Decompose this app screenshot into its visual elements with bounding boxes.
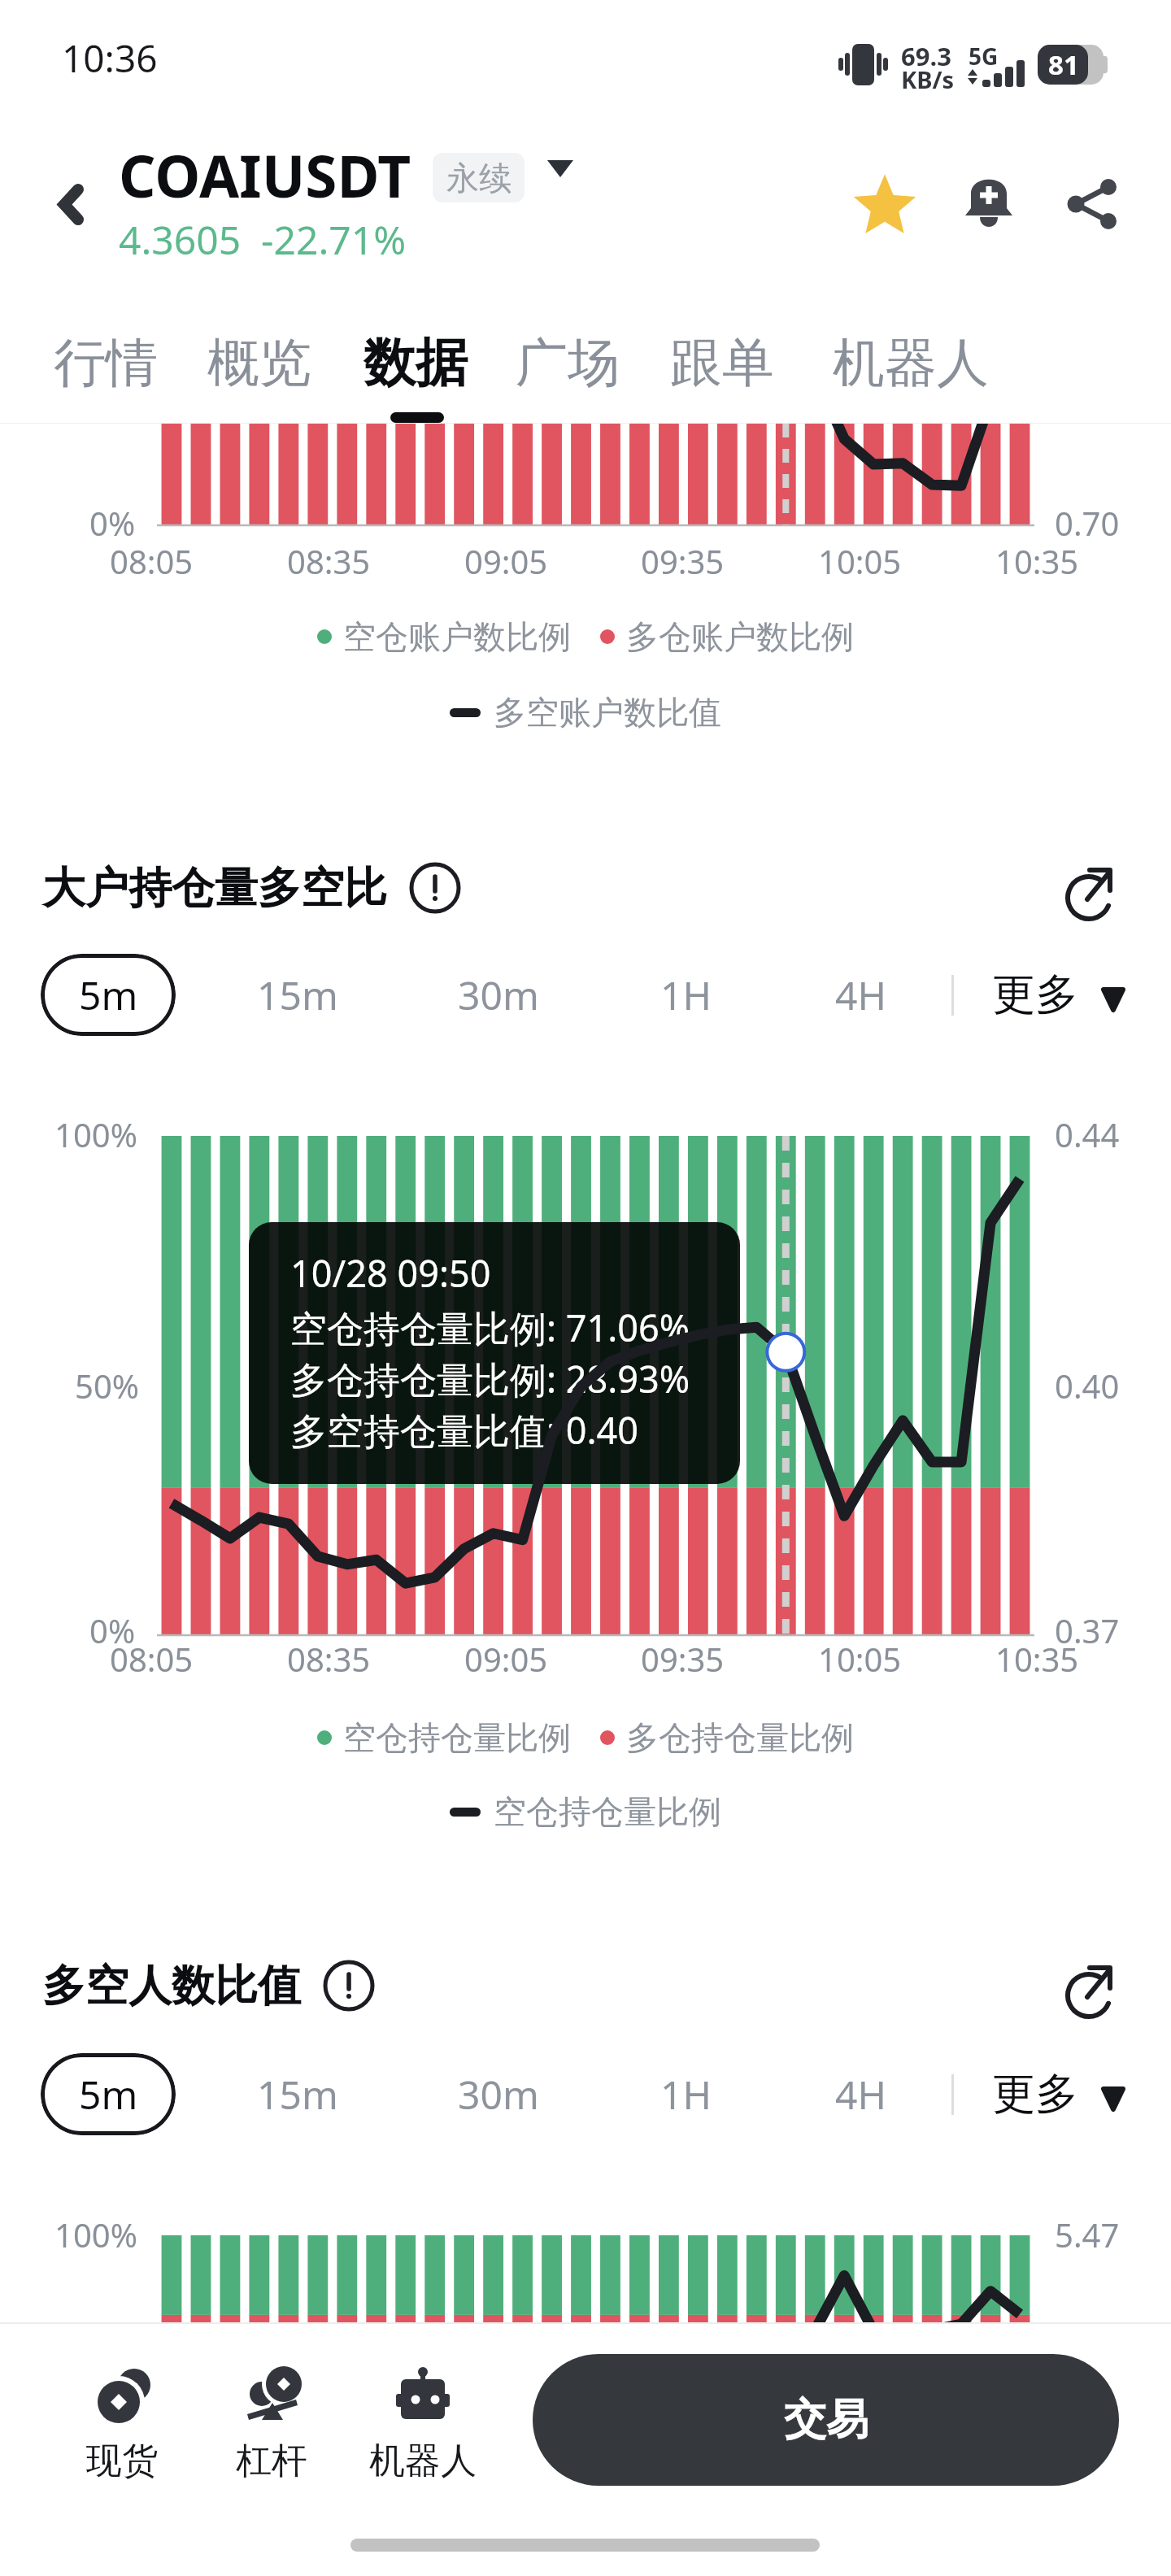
button[interactable]: Information — [407, 859, 464, 916]
staticText: 15m — [257, 968, 338, 1021]
staticText: 10/28 09:50 — [290, 1248, 491, 1298]
staticText: 更多 — [992, 968, 1078, 1022]
staticText: 0.37 — [1055, 1608, 1120, 1652]
staticText: 100% — [54, 1112, 137, 1156]
button[interactable]: Information — [320, 1957, 377, 2014]
button[interactable]: 交易 — [533, 2354, 1119, 2486]
staticText: 10:05 — [818, 1637, 902, 1681]
staticText: 30m — [458, 2068, 539, 2121]
staticText: 08:05 — [110, 1637, 194, 1681]
staticText: 1H — [660, 2068, 712, 2121]
button[interactable]: Share — [1059, 168, 1127, 236]
staticText: 空仓账户数比例 — [343, 616, 571, 657]
button[interactable]: Open in full screen — [1057, 867, 1122, 932]
staticText: 空仓持仓量比例 — [343, 1717, 571, 1758]
staticText: 50% — [75, 1364, 139, 1408]
staticText: 杠杆 — [236, 2439, 307, 2483]
staticText: 08:05 — [110, 539, 194, 583]
button[interactable]: 5m — [41, 954, 176, 1036]
staticText: 更多 — [992, 2067, 1078, 2121]
staticText: 100% — [54, 2213, 137, 2256]
staticText: COAIUSDT — [119, 136, 411, 201]
button[interactable]: 30m — [440, 954, 557, 1036]
staticText: 跟单 — [670, 330, 774, 396]
button[interactable]: 现货 — [57, 2364, 187, 2483]
staticText: 08:35 — [287, 1637, 371, 1681]
button[interactable]: Select contract type — [538, 146, 583, 191]
staticText: KB/s — [901, 63, 955, 95]
staticText: 多空持仓量比值: 0.40 — [290, 1405, 639, 1455]
button[interactable]: 更多 — [984, 2053, 1134, 2135]
button[interactable]: Open in full screen — [1057, 1965, 1122, 2030]
staticText: 10:35 — [995, 539, 1079, 583]
button[interactable]: 跟单 — [654, 317, 790, 409]
staticText: 0% — [89, 1608, 136, 1652]
staticText: 30m — [458, 968, 539, 1021]
staticText: 5m — [79, 2068, 138, 2121]
staticText: 广场 — [516, 330, 620, 396]
staticText: 5G — [969, 41, 999, 72]
button[interactable]: Price alert — [956, 168, 1025, 236]
button[interactable]: 永续 — [433, 153, 525, 202]
button[interactable]: 4H — [803, 2053, 920, 2135]
button[interactable]: 5m — [41, 2053, 176, 2135]
staticText: 4.3605 -22.71% — [119, 213, 407, 266]
staticText: 多仓持仓量比例: 28.93% — [290, 1354, 690, 1403]
staticText: 15m — [257, 2068, 338, 2121]
staticText: 0.44 — [1055, 1112, 1120, 1156]
button[interactable]: 机器人 — [816, 317, 1005, 409]
staticText: 交易 — [784, 2393, 868, 2447]
staticText: 10:36 — [62, 33, 158, 84]
staticText: 永续 — [446, 158, 511, 198]
staticText: 69.3 — [901, 39, 951, 73]
button[interactable]: 杠杆 — [207, 2364, 337, 2483]
button[interactable]: 15m — [239, 954, 356, 1036]
staticText: 5m — [79, 968, 138, 1021]
button[interactable]: 30m — [440, 2053, 557, 2135]
staticText: 大户持仓量多空比 — [42, 861, 387, 916]
button[interactable]: 概览 — [191, 317, 328, 409]
staticText: 4H — [835, 2068, 887, 2121]
button[interactable]: 1H — [628, 2053, 745, 2135]
staticText: 09:05 — [464, 1637, 548, 1681]
staticText: 0% — [89, 501, 136, 545]
staticText: 09:35 — [641, 1637, 725, 1681]
staticText: 现货 — [86, 2439, 158, 2483]
button[interactable]: 更多 — [984, 954, 1134, 1036]
staticText: 4H — [835, 968, 887, 1021]
staticText: 10:35 — [995, 1637, 1079, 1681]
staticText: 空仓持仓量比例 — [494, 1791, 721, 1832]
staticText: 多仓账户数比例 — [626, 616, 854, 657]
button[interactable]: 15m — [239, 2053, 356, 2135]
staticText: 09:35 — [641, 539, 725, 583]
staticText: 行情 — [54, 330, 158, 396]
button[interactable]: 广场 — [499, 317, 636, 409]
staticText: 5.47 — [1055, 2213, 1120, 2256]
staticText: 多空人数比值 — [42, 1959, 301, 2013]
staticText: 机器人 — [369, 2439, 477, 2483]
staticText: 08:35 — [287, 539, 371, 583]
button[interactable]: 行情 — [37, 317, 174, 409]
button[interactable]: 数据 — [347, 317, 484, 409]
button[interactable]: 1H — [628, 954, 745, 1036]
staticText: 数据 — [363, 330, 468, 396]
staticText: 1H — [660, 968, 712, 1021]
button[interactable]: 机器人 — [358, 2364, 488, 2483]
staticText: 概览 — [207, 330, 311, 396]
button[interactable]: Back — [42, 172, 104, 234]
staticText: 空仓持仓量比例: 71.06% — [290, 1303, 690, 1352]
staticText: 机器人 — [833, 330, 989, 396]
staticText: 0.40 — [1055, 1364, 1120, 1408]
staticText: 09:05 — [464, 539, 548, 583]
button[interactable]: 4H — [803, 954, 920, 1036]
button[interactable]: Favorite — [851, 171, 919, 239]
staticText: 0.70 — [1055, 501, 1120, 545]
staticText: 多空账户数比值 — [494, 692, 721, 733]
staticText: 10:05 — [818, 539, 902, 583]
staticText: 81 — [1048, 46, 1079, 83]
staticText: 多仓持仓量比例 — [626, 1717, 854, 1758]
